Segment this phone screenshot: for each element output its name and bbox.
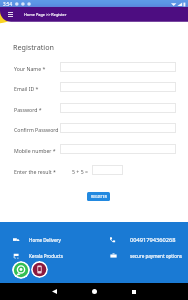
button[interactable]	[60, 144, 176, 154]
button[interactable]: Kerala Products	[13, 251, 63, 260]
button[interactable]	[60, 62, 176, 72]
button[interactable]	[60, 82, 176, 92]
button[interactable]: Recent apps	[124, 283, 144, 300]
button[interactable]: secure payment options	[110, 251, 183, 260]
staticText: Confirm Password *	[14, 126, 63, 133]
button[interactable]: Chat on WhatsApp	[12, 261, 30, 279]
staticText: Mobile number *	[14, 147, 56, 154]
button[interactable]: Call us	[31, 261, 48, 278]
button[interactable]: 00491794360268	[109, 235, 176, 244]
staticText: REGISTER	[91, 194, 107, 199]
staticText: secure payment options	[130, 253, 183, 259]
button[interactable]: Home Delivery	[13, 235, 61, 244]
staticText: Kerala Products	[29, 253, 63, 259]
staticText: Home Delivery	[29, 237, 61, 243]
button[interactable]: Home	[84, 283, 104, 300]
button[interactable]: Back	[44, 283, 64, 300]
staticText: 3:54	[3, 1, 13, 7]
button[interactable]	[92, 165, 123, 175]
button[interactable]: Menu	[6, 9, 15, 20]
staticText: Registration	[13, 42, 54, 52]
button[interactable]	[60, 123, 176, 133]
staticText: Enter the result *	[14, 168, 56, 175]
staticText: Password *	[14, 106, 42, 113]
staticText: 5 + 5 =	[72, 168, 88, 175]
staticText: 00491794360268	[130, 236, 176, 244]
staticText: Home Page >> Register	[24, 12, 67, 17]
staticText: Your Name *	[14, 65, 46, 72]
button[interactable]: REGISTER	[87, 192, 110, 201]
staticText: Email ID *	[14, 85, 39, 92]
button[interactable]	[60, 103, 176, 113]
